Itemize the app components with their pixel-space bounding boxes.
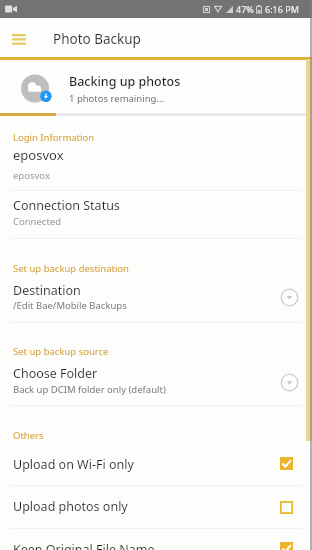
staticText: Backing up photos bbox=[69, 73, 181, 90]
staticText: /Edit Bae/Mobile Backups bbox=[13, 299, 127, 312]
staticText: 47% bbox=[236, 3, 254, 15]
staticText: eposvox bbox=[13, 169, 50, 182]
staticText: Choose Folder bbox=[13, 365, 98, 382]
staticText: 6:16 PM bbox=[265, 3, 299, 15]
button[interactable]: Expand options bbox=[278, 286, 300, 308]
staticText: Upload photos only bbox=[13, 498, 128, 515]
button[interactable]: Upload photos only, unchecked bbox=[275, 496, 297, 518]
button[interactable]: Expand options bbox=[278, 371, 300, 393]
staticText: Destination bbox=[13, 282, 81, 299]
button[interactable]: Keep Original File Name, checked bbox=[275, 537, 297, 550]
staticText: Login Information bbox=[13, 131, 95, 144]
button[interactable] bbox=[0, 494, 312, 528]
button[interactable] bbox=[0, 60, 312, 112]
staticText: eposvox bbox=[13, 146, 64, 164]
button[interactable] bbox=[0, 194, 312, 238]
staticText: Connection Status bbox=[13, 197, 120, 214]
staticText: Connected bbox=[13, 215, 62, 228]
button[interactable] bbox=[0, 363, 312, 405]
staticText: Back up DCIM folder only (default) bbox=[13, 383, 166, 396]
staticText: 1 photos remaining... bbox=[69, 92, 164, 105]
staticText: Keep Original File Name bbox=[13, 541, 155, 550]
button[interactable]: Open navigation drawer bbox=[6, 26, 32, 52]
button[interactable] bbox=[0, 280, 312, 322]
staticText: Set up backup source bbox=[13, 345, 109, 358]
button[interactable] bbox=[0, 452, 312, 485]
staticText: Photo Backup bbox=[53, 30, 141, 48]
staticText: Upload on Wi-Fi only bbox=[13, 456, 134, 473]
staticText: Set up backup destination bbox=[13, 262, 129, 275]
button[interactable]: Upload on Wi-Fi only, checked bbox=[275, 452, 297, 474]
button[interactable] bbox=[0, 146, 312, 188]
staticText: Others bbox=[13, 429, 44, 442]
button[interactable] bbox=[0, 536, 312, 550]
